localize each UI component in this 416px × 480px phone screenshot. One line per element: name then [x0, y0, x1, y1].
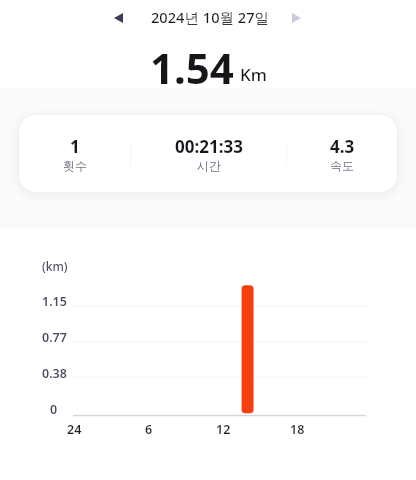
staticText: 횟수 — [63, 158, 87, 173]
staticText: 12 — [216, 421, 231, 438]
button[interactable]: 4.3 — [287, 115, 397, 192]
staticText: 2024년 10월 27일 — [151, 7, 270, 27]
button[interactable]: 1 — [19, 115, 130, 192]
staticText: (km) — [42, 258, 68, 274]
staticText: 0.38 — [42, 365, 67, 382]
staticText: 0.77 — [42, 329, 67, 346]
staticText: 18 — [290, 421, 305, 438]
button[interactable]: Next day — [281, 3, 311, 33]
staticText: 4.3 — [330, 135, 355, 158]
staticText: 1 — [70, 135, 80, 158]
staticText: 속도 — [330, 158, 354, 173]
staticText: 6 — [145, 421, 153, 438]
staticText: 1.54 — [150, 39, 234, 96]
staticText: 00:21:33 — [175, 135, 243, 158]
staticText: 1.15 — [42, 293, 67, 310]
button[interactable]: Previous day — [103, 3, 133, 33]
staticText: Km — [240, 63, 267, 86]
staticText: 시간 — [197, 158, 221, 173]
button[interactable]: 00:21:33 — [131, 115, 286, 192]
staticText: 24 — [67, 421, 82, 438]
staticText: 0 — [50, 401, 58, 418]
